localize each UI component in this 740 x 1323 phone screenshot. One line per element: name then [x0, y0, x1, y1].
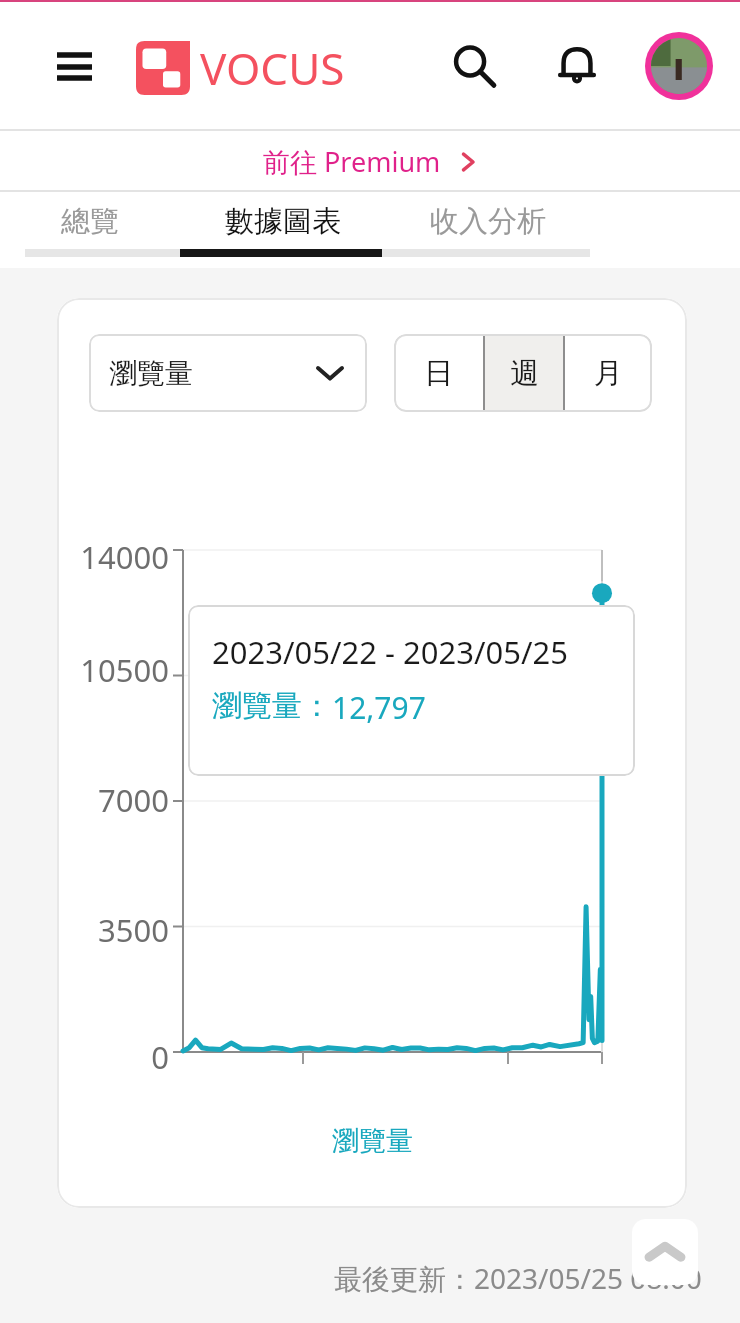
button[interactable]: 數據圖表 [180, 192, 385, 250]
button[interactable]: 前往 Premium [0, 131, 740, 192]
button[interactable]: Notifications [549, 38, 605, 94]
staticText: 瀏覽量 [332, 1124, 413, 1158]
staticText: 瀏覽量： [212, 687, 332, 725]
staticText: 14000 [57, 536, 169, 578]
staticText: 月 [594, 355, 623, 392]
staticText: 最後更新：2023/05/25 08:00 [334, 1259, 702, 1297]
staticText: 12,797 [332, 687, 426, 728]
button[interactable]: Search [446, 38, 502, 94]
staticText: 10500 [57, 649, 169, 691]
staticText: 週 [510, 355, 539, 392]
staticText: 2023/05/22 - 2023/05/25 [212, 631, 568, 673]
button[interactable]: Scroll to top [632, 1219, 698, 1285]
staticText: 7000 [57, 779, 169, 821]
staticText: 前往 Premium [263, 143, 441, 180]
button[interactable]: 日 [394, 334, 483, 412]
staticText: 3500 [57, 909, 169, 951]
staticText: 日 [424, 355, 453, 392]
button[interactable]: Menu [42, 42, 108, 90]
staticText: 總覽 [61, 203, 119, 240]
button[interactable]: 瀏覽量 [89, 334, 367, 412]
button[interactable]: Profile [645, 32, 713, 100]
staticText: 瀏覽量 [109, 356, 193, 391]
button[interactable]: 月 [565, 334, 652, 412]
staticText: VOCUS [200, 38, 345, 98]
button[interactable]: VOCUS [136, 38, 345, 98]
button[interactable]: 總覽 [0, 192, 180, 250]
staticText: 收入分析 [430, 203, 546, 240]
button[interactable]: 週 [483, 334, 565, 412]
button[interactable]: 收入分析 [385, 192, 590, 250]
staticText: 0 [57, 1036, 169, 1078]
staticText: 數據圖表 [225, 203, 341, 240]
